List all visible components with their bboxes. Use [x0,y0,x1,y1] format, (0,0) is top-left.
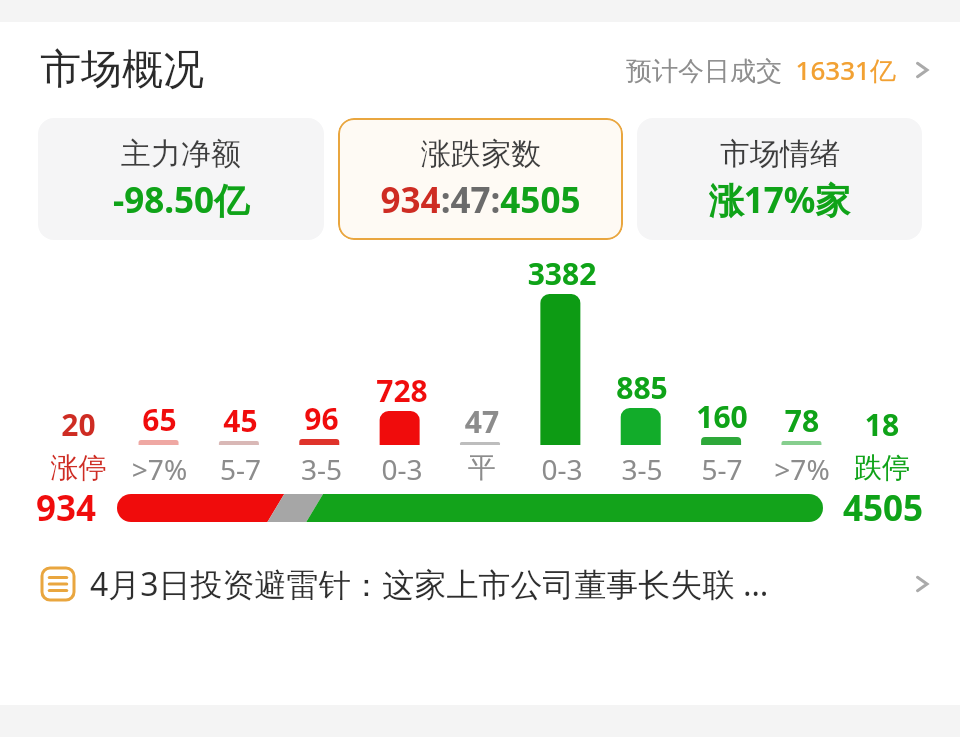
staticText: 160 [682,396,762,437]
button[interactable]: 预计今日成交 16331亿 [626,42,936,98]
staticText: 4505 [843,484,924,532]
staticText: 涨17%家 [637,176,922,224]
staticText: 跌停 [842,450,922,485]
staticText: 4月3日投资避雷针：这家上市公司董事长失联 … [90,562,902,606]
staticText: 5-7 [682,450,762,488]
staticText: 3-5 [602,450,682,488]
staticText: >7% [762,450,842,488]
staticText: 885 [602,367,682,408]
staticText: 涨跌家数 [421,135,541,173]
staticText: 45 [200,400,281,441]
staticText: 78 [762,400,842,441]
staticText: 728 [362,370,442,411]
staticText: 96 [281,398,362,439]
staticText: 3-5 [281,450,362,488]
staticText: >7% [119,450,200,488]
button[interactable]: 4月3日投资避雷针：这家上市公司董事长失联 … [0,550,960,618]
staticText: 平 [442,450,522,485]
staticText: 预计今日成交 16331亿 [626,52,896,88]
staticText: 934 [36,484,97,532]
staticText: 主力净额 [121,135,241,173]
staticText: 47 [442,401,522,442]
staticText: 市场概况 [40,44,204,96]
button[interactable]: 主力净额 [38,118,324,240]
button[interactable]: 市场情绪 [637,118,922,240]
staticText: 18 [842,404,922,445]
staticText: 3382 [522,253,602,294]
staticText: 0-3 [522,450,602,488]
staticText: 934:47:4505 [338,176,623,224]
staticText: -98.50亿 [38,176,324,224]
button[interactable]: 涨跌家数 [338,118,623,240]
staticText: 65 [119,399,200,440]
staticText: 涨停 [38,450,119,485]
staticText: 20 [38,404,119,445]
staticText: 市场情绪 [720,135,840,173]
staticText: 5-7 [200,450,281,488]
staticText: 0-3 [362,450,442,488]
